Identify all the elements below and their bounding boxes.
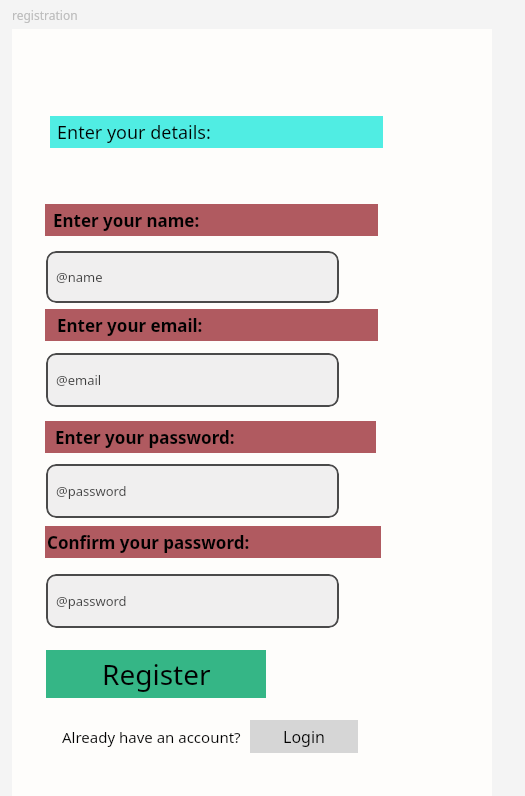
staticText: @name bbox=[56, 268, 103, 286]
button[interactable]: Enter your email: bbox=[45, 309, 378, 341]
staticText: Enter your password: bbox=[55, 426, 235, 449]
button[interactable]: Confirm your password: bbox=[45, 526, 381, 558]
staticText: Enter your name: bbox=[53, 209, 200, 232]
staticText: @password bbox=[56, 592, 127, 610]
button[interactable]: @password bbox=[46, 464, 339, 518]
staticText: @email bbox=[56, 371, 102, 389]
staticText: Enter your details: bbox=[57, 120, 211, 145]
button[interactable]: @password bbox=[46, 574, 339, 628]
staticText: Confirm your password: bbox=[47, 531, 250, 554]
button[interactable]: Enter your password: bbox=[45, 421, 376, 453]
staticText: @password bbox=[56, 482, 127, 500]
button[interactable]: Register bbox=[46, 650, 266, 698]
button[interactable]: @name bbox=[46, 251, 339, 303]
staticText: Already have an account? bbox=[62, 727, 241, 747]
staticText: Enter your email: bbox=[57, 314, 203, 337]
button[interactable]: Login bbox=[250, 720, 358, 753]
staticText: Login bbox=[283, 726, 325, 748]
button[interactable]: @email bbox=[46, 353, 339, 407]
staticText: Register bbox=[102, 655, 211, 693]
staticText: registration bbox=[12, 7, 78, 23]
button[interactable]: Enter your details: bbox=[50, 116, 383, 148]
button[interactable]: Enter your name: bbox=[45, 204, 378, 236]
